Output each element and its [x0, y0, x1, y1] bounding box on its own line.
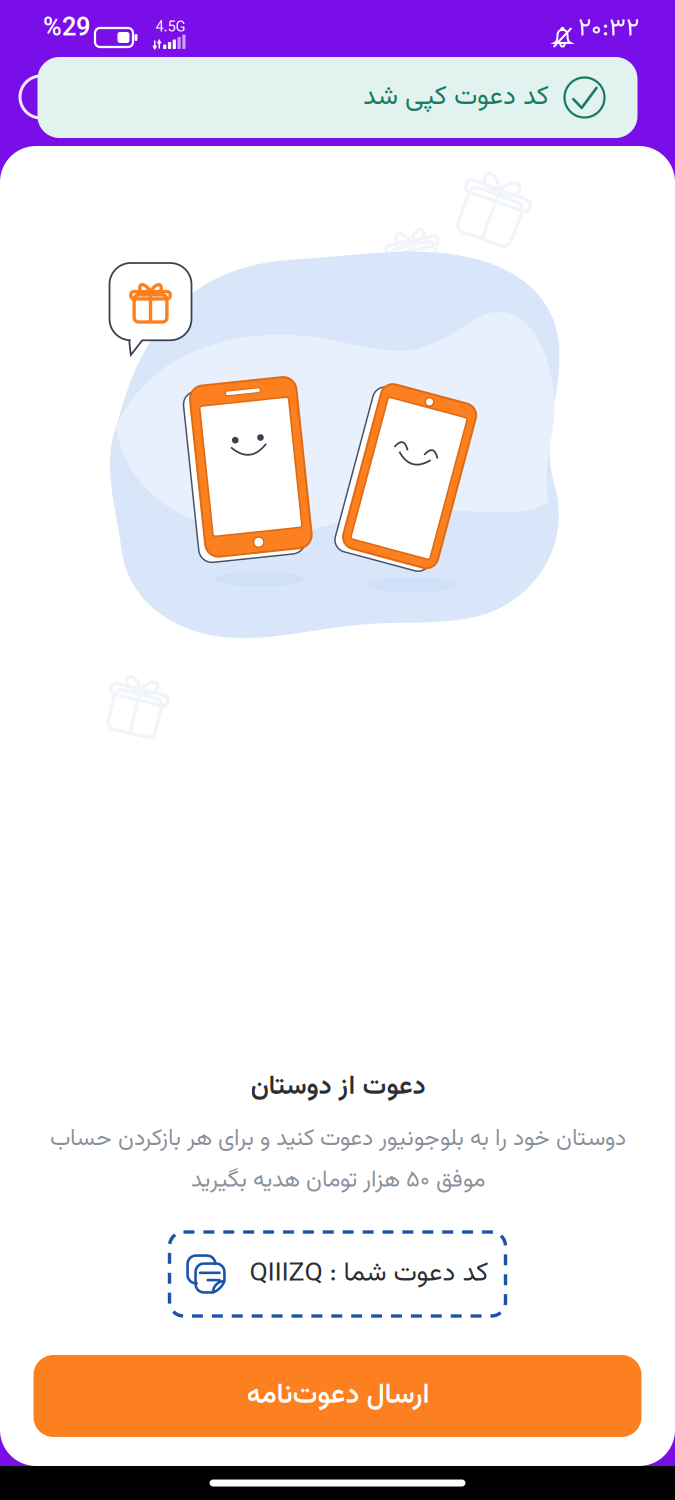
staticText: ۲۰:۳۲ — [578, 9, 639, 49]
staticText: دعوت از دوستان — [250, 1066, 425, 1108]
staticText: کد دعوت کپی شد — [362, 77, 548, 118]
button[interactable]: Back — [20, 76, 62, 118]
staticText: %29 — [43, 9, 90, 49]
staticText: کد دعوت شما : QIIIZQ — [249, 1253, 488, 1295]
staticText: موفق ۵۰ هزار تومان هدیه بگیرید — [190, 1162, 484, 1199]
button[interactable]: ارسال دعوت‌نامه — [33, 1355, 641, 1437]
button[interactable]: کد دعوت شما : QIIIZQ — [169, 1232, 505, 1316]
staticText: 4.5G — [155, 16, 185, 39]
staticText: ارسال دعوت‌نامه — [246, 1374, 429, 1418]
staticText: دوستان خود را به بلوجونیور دعوت کنید و ب… — [49, 1121, 625, 1158]
